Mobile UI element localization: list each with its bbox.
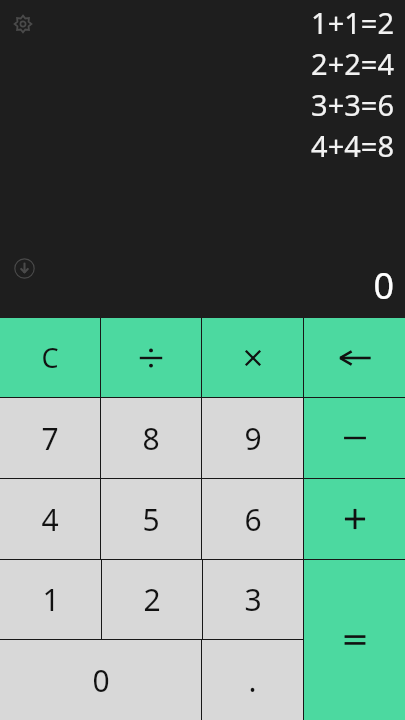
button[interactable]: Divide bbox=[101, 318, 201, 397]
staticText: 3+3=6 bbox=[311, 85, 394, 124]
staticText: 4 bbox=[41, 499, 59, 540]
button[interactable]: Save history bbox=[11, 255, 37, 281]
button[interactable]: Plus bbox=[304, 479, 405, 559]
staticText: 7 bbox=[41, 418, 59, 459]
staticText: C bbox=[41, 339, 59, 376]
staticText: 1+1=2 bbox=[311, 3, 394, 42]
button[interactable]: 8 bbox=[101, 398, 201, 478]
button[interactable]: 2 bbox=[102, 560, 202, 639]
button[interactable]: Minus bbox=[304, 398, 405, 478]
button[interactable]: 0 bbox=[0, 640, 201, 720]
button[interactable]: Backspace bbox=[304, 318, 405, 397]
button[interactable]: . bbox=[202, 640, 303, 720]
staticText: 2 bbox=[143, 579, 161, 620]
staticText: 6 bbox=[244, 499, 262, 540]
staticText: 9 bbox=[244, 418, 262, 459]
staticText: . bbox=[248, 660, 257, 701]
button[interactable]: 3 bbox=[203, 560, 303, 639]
button[interactable]: Settings bbox=[10, 11, 36, 37]
staticText: 0 bbox=[92, 660, 110, 701]
button[interactable]: Equals bbox=[304, 560, 405, 720]
button[interactable]: 9 bbox=[202, 398, 303, 478]
staticText: 2+2=4 bbox=[311, 44, 394, 83]
button[interactable]: Multiply bbox=[202, 318, 303, 397]
staticText: 0 bbox=[373, 261, 394, 310]
button[interactable]: 7 bbox=[0, 398, 100, 478]
button[interactable]: 1 bbox=[0, 560, 101, 639]
button[interactable]: Clear bbox=[0, 318, 100, 397]
staticText: 3 bbox=[244, 579, 262, 620]
button[interactable]: 5 bbox=[101, 479, 201, 559]
staticText: 5 bbox=[142, 499, 160, 540]
staticText: 8 bbox=[142, 418, 160, 459]
staticText: 4+4=8 bbox=[311, 126, 394, 165]
button[interactable]: 4 bbox=[0, 479, 100, 559]
staticText: 1 bbox=[42, 579, 60, 620]
button[interactable]: 6 bbox=[202, 479, 303, 559]
